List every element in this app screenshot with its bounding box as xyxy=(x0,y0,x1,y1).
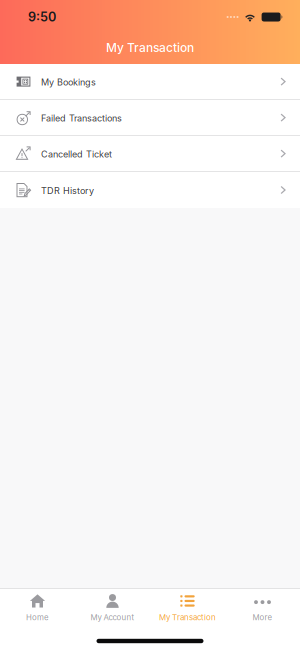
staticText: Home xyxy=(26,612,49,622)
staticText: My Account xyxy=(90,612,134,622)
staticText: My Transaction xyxy=(106,40,194,55)
staticText: My Transaction xyxy=(159,612,216,622)
button[interactable]: More xyxy=(225,589,300,627)
button[interactable]: My Account xyxy=(75,589,150,627)
button[interactable]: Home xyxy=(0,589,75,627)
staticText: More xyxy=(252,612,272,622)
button[interactable]: Cancelled Ticket xyxy=(0,136,300,172)
button[interactable]: My Bookings xyxy=(0,64,300,100)
staticText: 9:50 xyxy=(28,9,56,25)
button[interactable]: Failed Transactions xyxy=(0,100,300,136)
staticText: Failed Transactions xyxy=(41,113,122,124)
button[interactable]: My Transaction xyxy=(150,589,225,627)
staticText: TDR History xyxy=(41,185,94,196)
staticText: My Bookings xyxy=(41,77,96,88)
button[interactable]: TDR History xyxy=(0,172,300,208)
staticText: Cancelled Ticket xyxy=(41,149,112,160)
